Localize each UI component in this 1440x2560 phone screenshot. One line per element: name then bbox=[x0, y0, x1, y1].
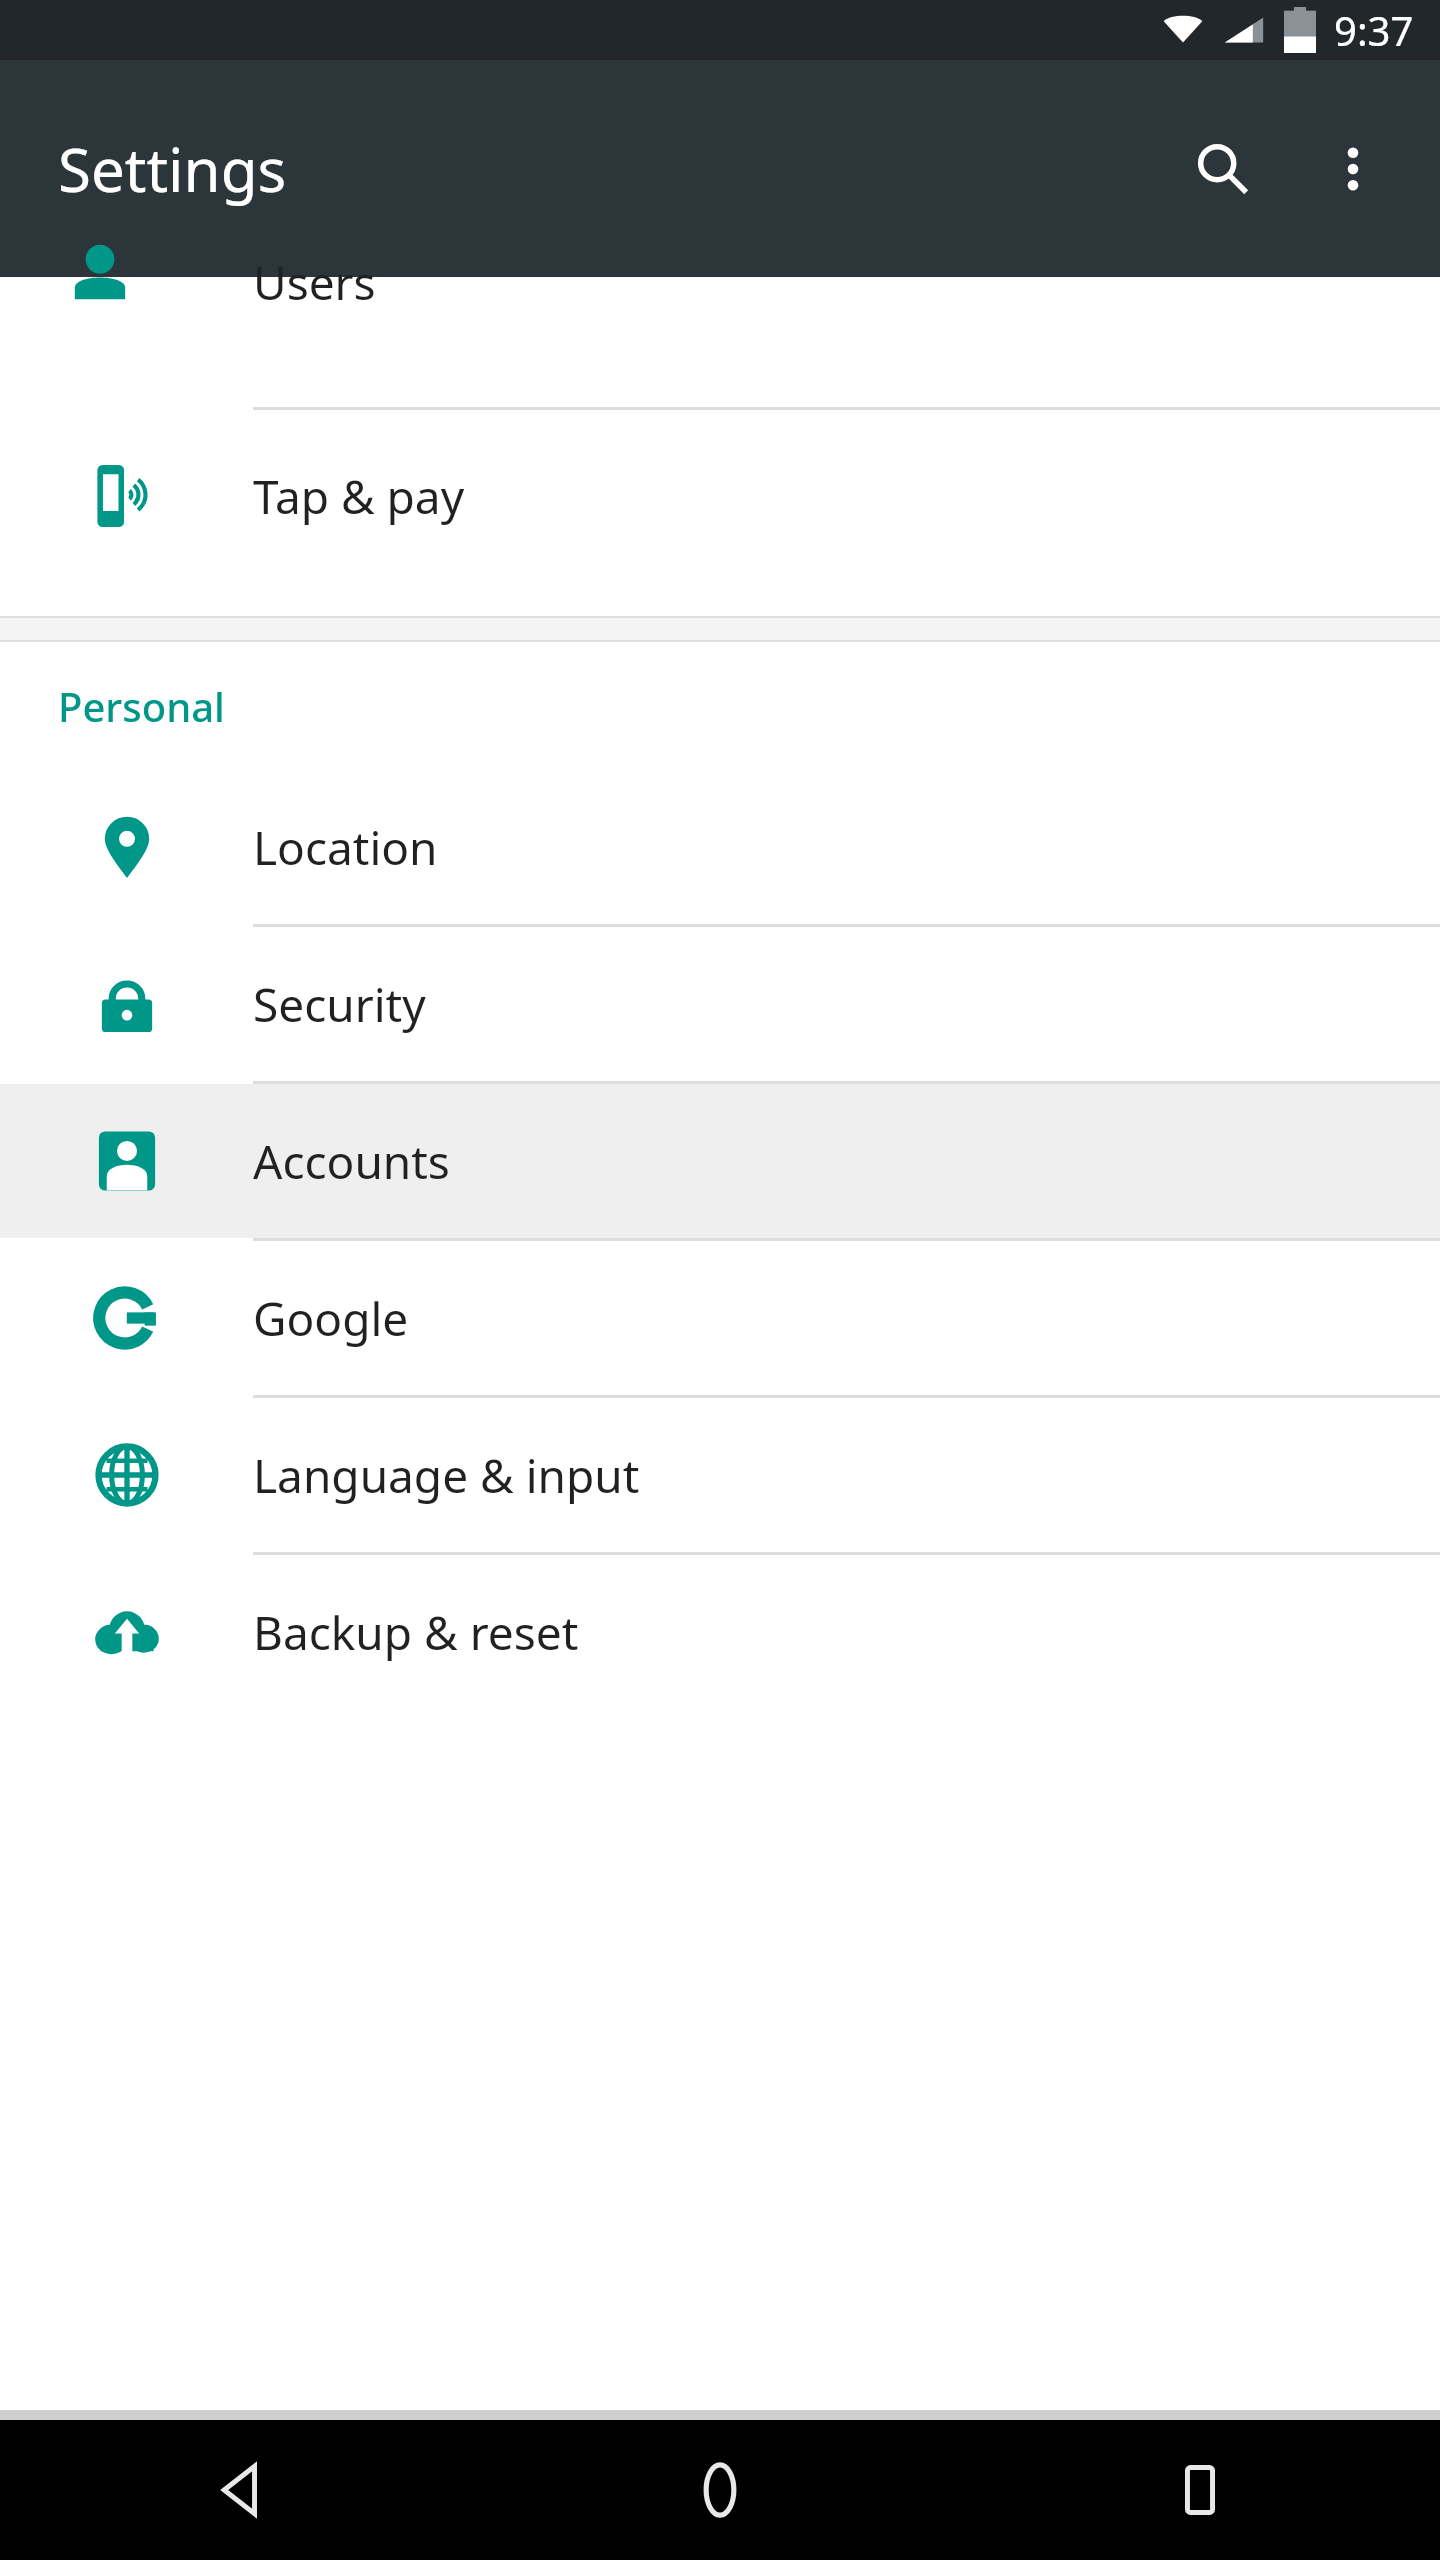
staticText: Users bbox=[253, 251, 376, 314]
button[interactable]: Recent apps bbox=[960, 2420, 1440, 2560]
staticText: Security bbox=[253, 973, 426, 1036]
button[interactable]: Back bbox=[0, 2420, 480, 2560]
button[interactable]: Google bbox=[0, 1241, 1440, 1395]
staticText: Settings bbox=[58, 128, 287, 210]
button[interactable]: More options bbox=[1288, 104, 1418, 234]
button[interactable]: Accounts bbox=[0, 1084, 1440, 1238]
button[interactable]: Home bbox=[480, 2420, 960, 2560]
staticText: Language & input bbox=[253, 1444, 640, 1507]
staticText: Location bbox=[253, 816, 438, 879]
staticText: Tap & pay bbox=[253, 465, 465, 528]
staticText: Backup & reset bbox=[253, 1601, 579, 1664]
button[interactable]: Location bbox=[0, 770, 1440, 924]
button[interactable]: Security bbox=[0, 927, 1440, 1081]
staticText: Accounts bbox=[253, 1130, 450, 1193]
button[interactable]: Language & input bbox=[0, 1398, 1440, 1552]
staticText: Personal bbox=[58, 679, 225, 733]
staticText: 9:37 bbox=[1334, 3, 1414, 57]
button[interactable]: Tap & pay bbox=[0, 410, 1440, 582]
button[interactable]: Users bbox=[0, 277, 1440, 407]
button[interactable]: Backup & reset bbox=[0, 1555, 1440, 1709]
staticText: Google bbox=[253, 1287, 409, 1350]
button[interactable]: Search bbox=[1158, 104, 1288, 234]
